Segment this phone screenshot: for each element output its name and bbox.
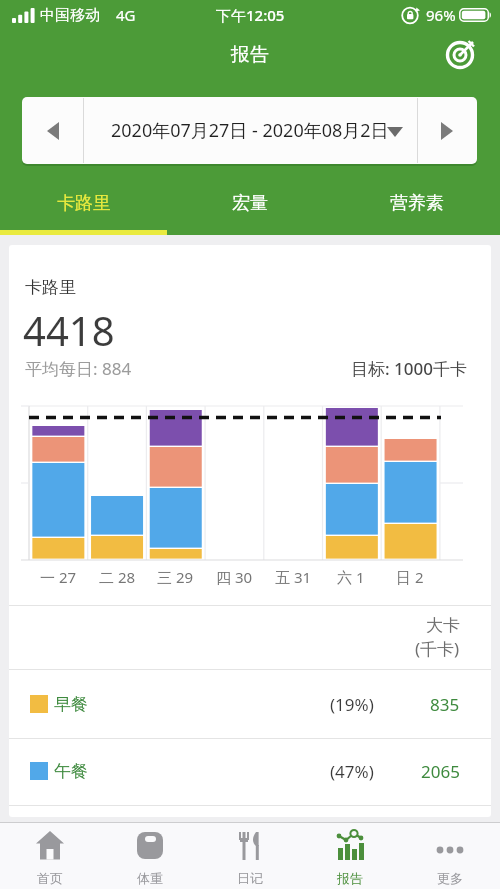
- staticText: 二 28: [99, 567, 136, 587]
- staticText: 营养素: [390, 192, 444, 215]
- staticText: 下午12:05: [216, 5, 285, 25]
- staticText: 835: [430, 693, 460, 715]
- staticText: 4G: [116, 5, 136, 25]
- staticText: 三 29: [157, 567, 194, 587]
- staticText: 五 31: [275, 567, 312, 587]
- staticText: 2020年07月27日 - 2020年08月2日: [111, 118, 389, 143]
- button[interactable]: 宏量: [167, 188, 333, 218]
- staticText: (千卡): [415, 637, 460, 659]
- staticText: 2065: [421, 760, 460, 782]
- staticText: 午餐: [54, 761, 88, 782]
- staticText: 卡路里: [57, 192, 111, 215]
- staticText: 宏量: [232, 192, 268, 215]
- button[interactable]: [417, 97, 477, 164]
- button[interactable]: [120, 828, 180, 886]
- staticText: 一 27: [40, 567, 77, 587]
- staticText: 4418: [23, 303, 115, 347]
- staticText: (19%): [330, 693, 374, 715]
- button[interactable]: [22, 97, 83, 164]
- button[interactable]: [9, 739, 491, 805]
- button[interactable]: [20, 828, 80, 886]
- staticText: 日记: [237, 870, 263, 886]
- staticText: 日 2: [396, 567, 424, 587]
- staticText: 首页: [37, 870, 63, 886]
- button[interactable]: [441, 36, 481, 74]
- button[interactable]: [420, 828, 480, 886]
- button[interactable]: [220, 828, 280, 886]
- staticText: 中国移动: [40, 6, 100, 25]
- staticText: 96%: [426, 5, 456, 25]
- staticText: 早餐: [54, 694, 88, 715]
- staticText: 体重: [137, 870, 163, 886]
- staticText: 目标: 1000千卡: [351, 357, 467, 377]
- staticText: 报告: [231, 43, 269, 67]
- staticText: 大卡: [426, 615, 460, 636]
- staticText: (47%): [330, 760, 374, 782]
- button[interactable]: 卡路里: [0, 188, 167, 218]
- button[interactable]: [9, 670, 491, 738]
- staticText: 更多: [437, 870, 463, 886]
- staticText: 平均每日: 884: [25, 357, 132, 377]
- staticText: 六 1: [337, 567, 365, 587]
- button[interactable]: 2020年07月27日 - 2020年08月2日: [83, 97, 417, 164]
- button[interactable]: [320, 828, 380, 886]
- staticText: 四 30: [216, 567, 253, 587]
- staticText: 卡路里: [25, 277, 76, 297]
- button[interactable]: 营养素: [333, 188, 500, 218]
- staticText: 报告: [337, 870, 363, 886]
